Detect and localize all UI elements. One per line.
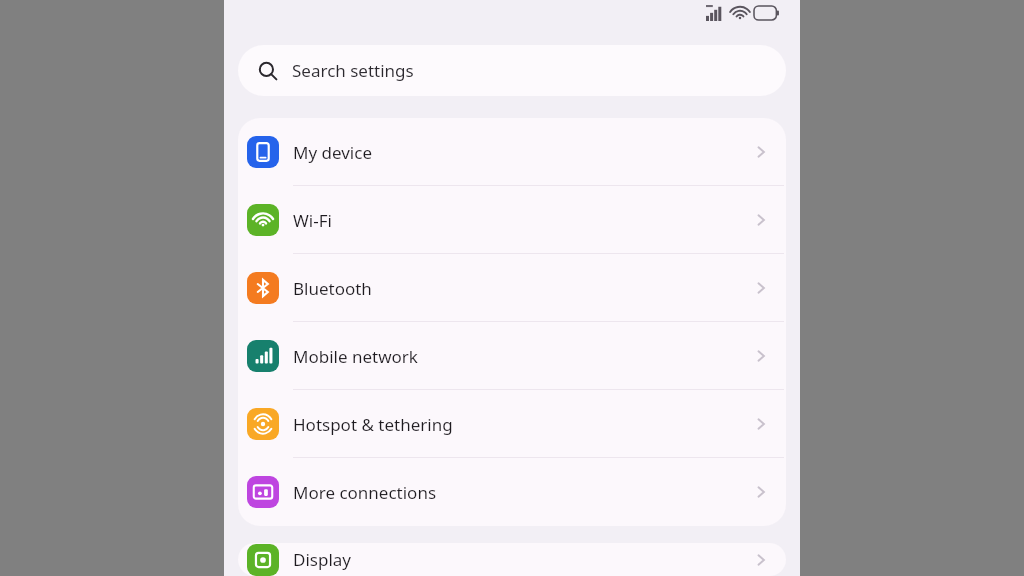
button[interactable]: Display: [238, 543, 786, 576]
button[interactable]: Wi-Fi: [238, 186, 786, 254]
button[interactable]: More connections: [238, 458, 786, 526]
staticText: Search settings: [292, 59, 414, 82]
button[interactable]: Mobile network: [238, 322, 786, 390]
button[interactable]: My device: [238, 118, 786, 186]
staticText: Hotspot & tethering: [293, 413, 752, 436]
staticText: Mobile network: [293, 345, 752, 368]
staticText: Display: [293, 548, 752, 571]
button[interactable]: Hotspot & tethering: [238, 390, 786, 458]
other: Search: [258, 61, 278, 81]
staticText: Bluetooth: [293, 277, 752, 300]
button[interactable]: Bluetooth: [238, 254, 786, 322]
button[interactable]: Search: [238, 45, 786, 96]
staticText: Wi-Fi: [293, 209, 752, 232]
staticText: More connections: [293, 481, 752, 504]
staticText: My device: [293, 141, 752, 164]
